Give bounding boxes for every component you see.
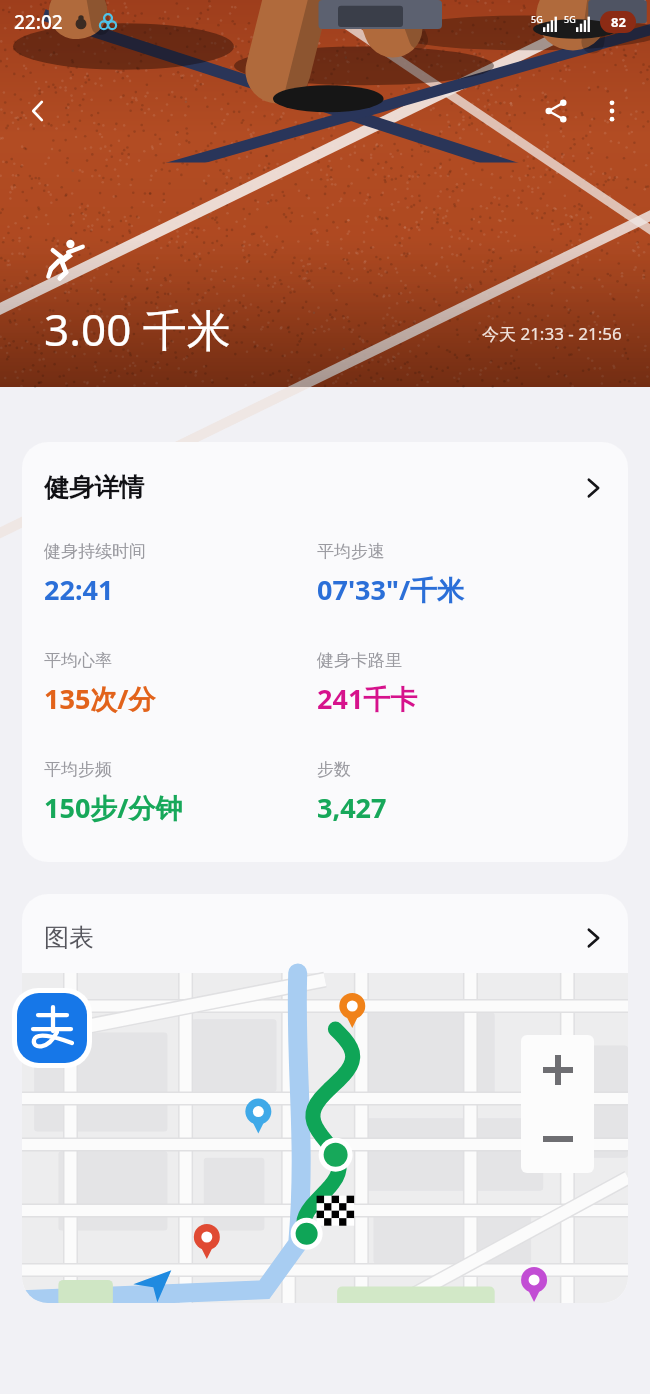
staticText: 健身详情: [44, 472, 144, 503]
button[interactable]: 图表: [22, 894, 628, 973]
staticText: 3,427: [317, 789, 387, 826]
staticText: 5G: [531, 13, 543, 25]
staticText: 平均步频: [44, 759, 112, 780]
staticText: 健身持续时间: [44, 541, 146, 562]
button[interactable]: Alipay: [17, 993, 87, 1063]
staticText: 平均步速: [317, 541, 385, 562]
button[interactable]: Share: [528, 83, 584, 139]
staticText: 07'33"/千米: [317, 571, 465, 608]
staticText: 135次/分: [44, 680, 156, 717]
staticText: 步数: [317, 759, 351, 780]
staticText: 今天 21:33 - 21:56: [482, 322, 622, 345]
button[interactable]: Zoom in: [521, 1035, 594, 1104]
staticText: 82: [611, 13, 626, 31]
staticText: 22:41: [44, 571, 114, 608]
staticText: 健身卡路里: [317, 650, 402, 671]
button[interactable]: Back: [10, 83, 66, 139]
staticText: 3.00 千米: [44, 299, 231, 359]
button[interactable]: 健身详情: [22, 442, 628, 862]
button[interactable]: Zoom out: [521, 1104, 594, 1173]
staticText: 22:02: [14, 9, 63, 35]
button[interactable]: More options: [584, 83, 640, 139]
staticText: 5G: [564, 13, 576, 25]
staticText: 图表: [44, 922, 94, 953]
staticText: 150步/分钟: [44, 789, 183, 826]
staticText: 241千卡: [317, 680, 418, 717]
staticText: 平均心率: [44, 650, 112, 671]
